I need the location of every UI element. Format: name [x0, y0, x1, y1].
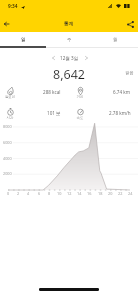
- staticText: 14: [77, 191, 82, 196]
- button[interactable]: Back: [0, 16, 14, 32]
- staticText: 2.78 km/h: [109, 110, 131, 116]
- button[interactable]: 월: [92, 32, 138, 47]
- staticText: 4000: [3, 156, 12, 161]
- staticText: 통계: [64, 21, 74, 27]
- staticText: 6.74 km: [113, 89, 131, 95]
- staticText: 속도: [72, 116, 88, 120]
- button[interactable]: 주: [46, 32, 92, 47]
- staticText: 6000: [3, 140, 12, 145]
- staticText: 주: [67, 37, 72, 43]
- staticText: 2000: [3, 171, 12, 176]
- staticText: 12: [67, 191, 72, 196]
- staticText: 288 kcal: [43, 89, 61, 95]
- button[interactable]: 속도: [70, 106, 132, 122]
- staticText: 거리: [72, 95, 88, 99]
- staticText: 월: [113, 37, 118, 43]
- button[interactable]: 거리: [70, 85, 132, 101]
- staticText: 걸음: [125, 70, 134, 75]
- staticText: 9:34: [8, 3, 18, 10]
- staticText: 8000: [3, 124, 12, 129]
- staticText: 4: [27, 191, 30, 196]
- staticText: 20: [108, 191, 113, 196]
- staticText: 22: [118, 191, 123, 196]
- staticText: 101 분: [47, 110, 61, 116]
- staticText: 16: [87, 191, 92, 196]
- button[interactable]: Share: [122, 16, 138, 32]
- staticText: 칼로리: [2, 95, 18, 99]
- button[interactable]: Next day: [81, 53, 91, 63]
- staticText: 12월 3일: [60, 55, 79, 61]
- staticText: 8,642: [53, 66, 85, 83]
- staticText: 시간: [2, 116, 18, 120]
- staticText: 2: [17, 191, 20, 196]
- staticText: 6: [38, 191, 41, 196]
- staticText: 일: [21, 37, 26, 43]
- staticText: 18: [98, 191, 103, 196]
- button[interactable]: 시간: [0, 106, 62, 122]
- button[interactable]: 일: [0, 32, 46, 47]
- staticText: 10: [57, 191, 62, 196]
- staticText: 24: [128, 191, 133, 196]
- staticText: 8: [48, 191, 51, 196]
- button[interactable]: Previous day: [48, 53, 58, 63]
- staticText: 0: [7, 191, 10, 196]
- button[interactable]: 칼로리: [0, 85, 62, 101]
